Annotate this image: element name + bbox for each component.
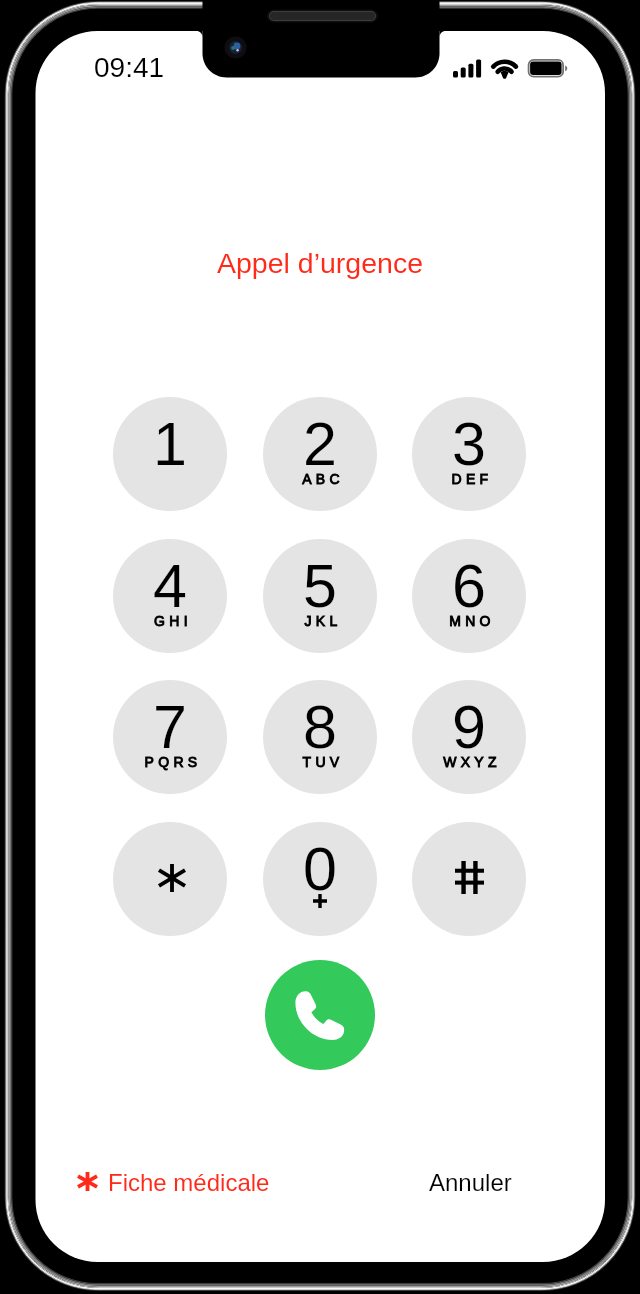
button[interactable]: 7 bbox=[113, 680, 227, 794]
button[interactable]: 1 bbox=[113, 397, 227, 511]
staticText: GHI bbox=[116, 613, 227, 629]
staticText: 09:41 bbox=[94, 52, 165, 83]
staticText: PQRS bbox=[116, 754, 227, 770]
staticText: MNO bbox=[415, 613, 526, 629]
button[interactable]: 3 bbox=[412, 397, 526, 511]
staticText: DEF bbox=[415, 471, 526, 487]
button[interactable]: 5 bbox=[263, 539, 377, 653]
staticText: 9 bbox=[412, 693, 526, 761]
staticText: ABC bbox=[266, 471, 377, 487]
staticText: Fiche médicale bbox=[108, 1169, 270, 1196]
staticText: 2 bbox=[263, 410, 377, 478]
staticText: TUV bbox=[266, 754, 377, 770]
button[interactable]: 4 bbox=[113, 539, 227, 653]
staticText: Appel d’urgence bbox=[0, 247, 640, 279]
staticText: 0 bbox=[263, 835, 377, 903]
staticText: MNO bbox=[415, 613, 526, 629]
button[interactable]: 6 bbox=[412, 539, 526, 653]
button[interactable]: 8 bbox=[263, 680, 377, 794]
staticText: GHI bbox=[116, 613, 227, 629]
button[interactable]: Appeler bbox=[265, 960, 375, 1070]
button[interactable] bbox=[113, 822, 227, 936]
staticText: TUV bbox=[266, 754, 377, 770]
button[interactable]: Annuler bbox=[429, 1169, 512, 1196]
staticText: 3 bbox=[412, 410, 526, 478]
staticText: JKL bbox=[266, 613, 377, 629]
staticText: 5 bbox=[263, 552, 377, 620]
staticText: JKL bbox=[266, 613, 377, 629]
button[interactable]: 9 bbox=[412, 680, 526, 794]
staticText: ABC bbox=[266, 471, 377, 487]
staticText: WXYZ bbox=[415, 754, 526, 770]
staticText: 8 bbox=[263, 693, 377, 761]
staticText: PQRS bbox=[116, 754, 227, 770]
button[interactable] bbox=[412, 822, 526, 936]
staticText: WXYZ bbox=[415, 754, 526, 770]
staticText: 1 bbox=[113, 410, 227, 478]
staticText: 7 bbox=[113, 693, 227, 761]
staticText: 4 bbox=[113, 552, 227, 620]
button[interactable]: Fiche médicale bbox=[78, 1169, 270, 1196]
staticText: 6 bbox=[412, 552, 526, 620]
staticText: DEF bbox=[415, 471, 526, 487]
button[interactable]: 2 bbox=[263, 397, 377, 511]
button[interactable]: 0 bbox=[263, 822, 377, 936]
